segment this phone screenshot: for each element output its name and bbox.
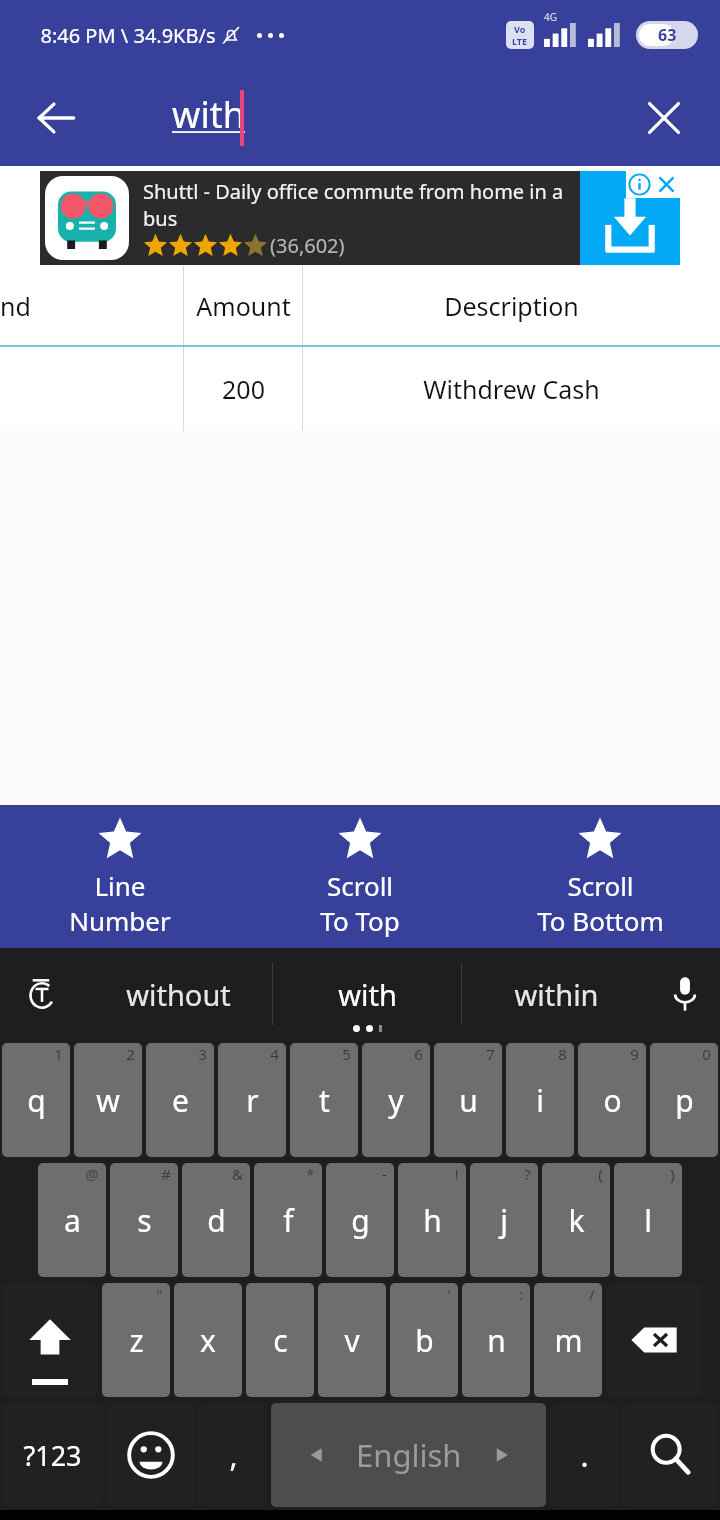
staticText: ) <box>670 1164 675 1184</box>
button[interactable]: : <box>462 1283 530 1397</box>
staticText: * <box>306 1164 315 1184</box>
staticText: 200 <box>222 372 265 406</box>
staticText: & <box>232 1164 243 1184</box>
staticText: h <box>423 1200 442 1241</box>
button[interactable]: Back <box>18 80 94 156</box>
button[interactable]: c <box>246 1283 314 1397</box>
button[interactable]: within <box>462 948 650 1040</box>
staticText: w <box>96 1080 120 1121</box>
staticText: u <box>459 1080 478 1121</box>
button[interactable]: 7 <box>434 1043 502 1157</box>
button[interactable]: * <box>254 1163 322 1277</box>
button[interactable]: . <box>550 1403 618 1507</box>
button[interactable]: Search <box>622 1403 718 1507</box>
button[interactable]: / <box>534 1283 602 1397</box>
button[interactable]: 1 <box>2 1043 70 1157</box>
button[interactable]: Voice input <box>650 948 720 1040</box>
staticText: with <box>172 90 245 139</box>
staticText: " <box>156 1284 163 1304</box>
button[interactable]: Space, English <box>271 1403 546 1507</box>
staticText: Scroll To Bottom <box>537 868 664 938</box>
staticText: 3 <box>198 1044 207 1064</box>
button[interactable]: ) <box>614 1163 682 1277</box>
button[interactable]: Shuttl - Daily office commute from home … <box>40 171 680 265</box>
staticText: t <box>319 1080 330 1121</box>
staticText: Amount <box>196 289 291 323</box>
button[interactable]: Text editing tools <box>0 948 84 1040</box>
staticText: 0 <box>702 1044 711 1064</box>
staticText: s <box>137 1200 152 1241</box>
button[interactable]: Ad information <box>626 171 653 198</box>
button[interactable]: - <box>326 1163 394 1277</box>
button[interactable]: Emoji <box>107 1403 195 1507</box>
button[interactable]: ' <box>390 1283 458 1397</box>
button[interactable]: 5 <box>290 1043 358 1157</box>
staticText: nd <box>0 289 31 323</box>
staticText: n <box>487 1320 506 1361</box>
staticText: 7 <box>486 1044 495 1064</box>
staticText: f <box>283 1200 294 1241</box>
staticText: 6 <box>414 1044 423 1064</box>
button[interactable]: Close ad <box>653 171 680 198</box>
staticText: , <box>229 1435 238 1476</box>
staticText: b <box>415 1320 434 1361</box>
button[interactable]: 6 <box>362 1043 430 1157</box>
button[interactable]: Close search <box>626 80 702 156</box>
staticText: a <box>64 1200 81 1241</box>
button[interactable]: Line Number <box>0 805 240 948</box>
button[interactable]: x <box>174 1283 242 1397</box>
staticText: p <box>675 1080 694 1121</box>
staticText: 1 <box>54 1044 63 1064</box>
button[interactable]: without <box>84 948 272 1040</box>
staticText: j <box>500 1200 508 1241</box>
button[interactable]: 3 <box>146 1043 214 1157</box>
button[interactable]: 8 <box>506 1043 574 1157</box>
button[interactable]: 2 <box>74 1043 142 1157</box>
staticText: z <box>129 1320 144 1361</box>
button[interactable]: ? <box>470 1163 538 1277</box>
button[interactable]: " <box>102 1283 170 1397</box>
button[interactable]: Scroll To Top <box>240 805 480 948</box>
button[interactable]: 9 <box>578 1043 646 1157</box>
button[interactable]: v <box>318 1283 386 1397</box>
staticText: ! <box>454 1164 459 1184</box>
staticText: ( <box>598 1164 603 1184</box>
staticText: Vo <box>514 23 526 35</box>
staticText: 9 <box>630 1044 639 1064</box>
button[interactable]: & <box>182 1163 250 1277</box>
staticText: / <box>589 1284 595 1304</box>
staticText: Line Number <box>69 868 171 938</box>
button[interactable]: Scroll To Bottom <box>480 805 720 948</box>
button[interactable]: @ <box>38 1163 106 1277</box>
button[interactable]: 0 <box>650 1043 718 1157</box>
button[interactable]: Shift <box>2 1283 98 1397</box>
button[interactable]: # <box>110 1163 178 1277</box>
staticText: q <box>27 1080 46 1121</box>
button[interactable]: Backspace <box>606 1283 702 1397</box>
staticText: without <box>126 975 231 1014</box>
staticText: 8:46 PM \ 34.9KB/s <box>40 22 216 49</box>
staticText: y <box>388 1080 404 1121</box>
staticText: x <box>200 1320 216 1361</box>
staticText: 63 <box>658 24 677 46</box>
button[interactable]: ! <box>398 1163 466 1277</box>
button[interactable]: with <box>273 948 461 1040</box>
staticText: k <box>568 1200 585 1241</box>
staticText: . <box>580 1435 589 1476</box>
staticText: m <box>554 1320 583 1361</box>
staticText: c <box>273 1320 288 1361</box>
staticText: with <box>338 975 397 1014</box>
staticText: Withdrew Cash <box>423 372 600 406</box>
staticText: within <box>514 975 599 1014</box>
button[interactable]: ?123 <box>2 1403 103 1507</box>
staticText: Shuttl - Daily office commute from home … <box>143 178 580 232</box>
staticText: 2 <box>126 1044 135 1064</box>
staticText: o <box>603 1080 622 1121</box>
button[interactable]: 4 <box>218 1043 286 1157</box>
staticText: 8 <box>558 1044 567 1064</box>
button[interactable]: ( <box>542 1163 610 1277</box>
staticText: i <box>536 1080 544 1121</box>
staticText: r <box>246 1080 259 1121</box>
staticText: 4G <box>544 10 557 24</box>
button[interactable]: , <box>199 1403 267 1507</box>
